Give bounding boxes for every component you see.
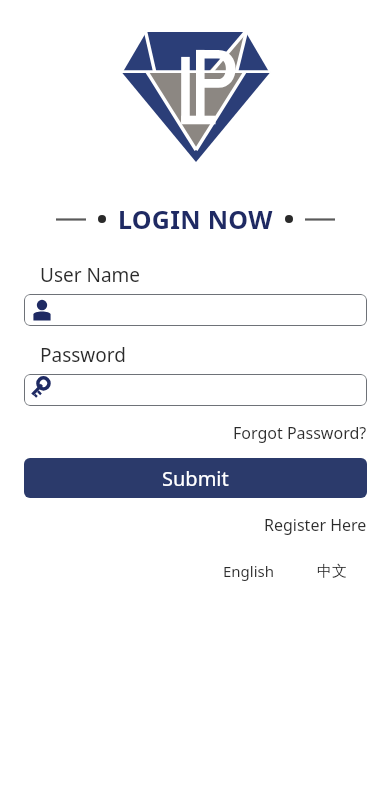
button[interactable]: Forgot Password? [209,420,391,446]
staticText: User Name [40,262,141,288]
button[interactable]: 中文 [311,559,353,584]
staticText: Submit [162,465,229,492]
button[interactable]: Register Here [240,512,391,538]
button[interactable]: English [217,558,281,584]
button[interactable]: Submit [24,458,367,498]
staticText: Password [40,342,126,368]
button[interactable]: Password [24,374,367,406]
staticText: LOGIN NOW [118,202,273,236]
button[interactable]: User name [24,294,367,326]
